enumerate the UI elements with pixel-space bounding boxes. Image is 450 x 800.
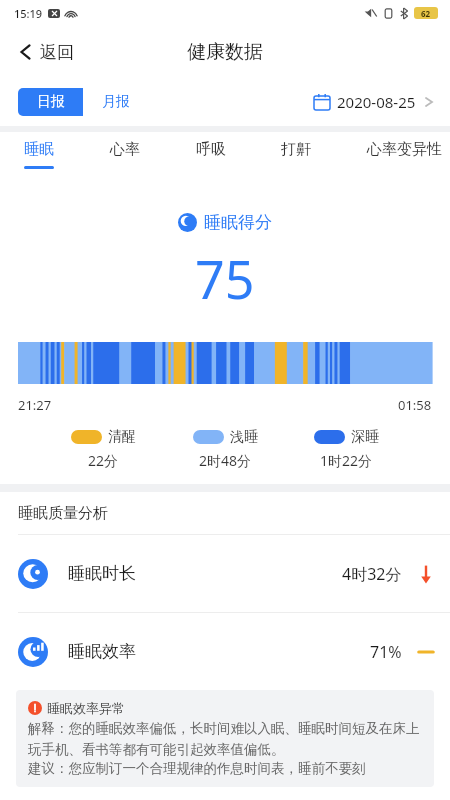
staticText: 75 xyxy=(195,243,255,314)
staticText: 睡眠得分 xyxy=(204,212,272,233)
button[interactable]: 打鼾 xyxy=(279,132,313,166)
staticText: 2020-08-25 xyxy=(337,92,416,112)
staticText: 62 xyxy=(421,8,431,19)
staticText: 呼吸 xyxy=(196,140,226,159)
button[interactable]: 睡眠 xyxy=(22,132,56,169)
staticText: 2时48分 xyxy=(199,451,252,470)
staticText: 月报 xyxy=(102,93,130,111)
button[interactable]: 心率 xyxy=(108,132,142,166)
button[interactable]: 睡眠时长 xyxy=(0,535,450,612)
staticText: 解释：您的睡眠效率偏低，长时间难以入眠、睡眠时间短及在床上玩手机、看书等都有可能… xyxy=(28,720,422,758)
staticText: 清醒 xyxy=(108,428,136,446)
staticText: 建议：您应制订一个合理规律的作息时间表，睡前不要刻 xyxy=(28,760,366,777)
staticText: 睡眠 xyxy=(24,140,54,159)
staticText: 睡眠效率 xyxy=(68,641,136,662)
staticText: 睡眠时长 xyxy=(68,563,136,584)
staticText: 15:19 xyxy=(14,6,43,21)
staticText: 心率变异性 xyxy=(367,140,442,159)
staticText: 1时22分 xyxy=(320,451,373,470)
staticText: 返回 xyxy=(40,42,74,63)
staticText: 日报 xyxy=(37,93,65,111)
staticText: 深睡 xyxy=(351,428,379,446)
button[interactable]: 月报 xyxy=(83,88,148,116)
staticText: 71% xyxy=(370,641,402,663)
staticText: 睡眠效率异常 xyxy=(47,700,125,716)
staticText: 4时32分 xyxy=(342,563,402,585)
staticText: 01:58 xyxy=(398,396,432,414)
button[interactable]: 睡眠效率 xyxy=(0,613,450,690)
button[interactable]: 呼吸 xyxy=(194,132,228,166)
button[interactable]: 返回 xyxy=(14,37,78,67)
staticText: 健康数据 xyxy=(187,40,263,64)
button[interactable]: 2020-08-25 xyxy=(310,88,438,116)
button[interactable]: 日报 xyxy=(18,88,83,116)
staticText: 打鼾 xyxy=(281,140,311,159)
staticText: 睡眠质量分析 xyxy=(18,504,108,523)
staticText: 22分 xyxy=(88,451,119,470)
staticText: 心率 xyxy=(110,140,140,159)
staticText: 浅睡 xyxy=(230,428,258,446)
staticText: 21:27 xyxy=(18,396,52,414)
button[interactable]: 心率变异性 xyxy=(365,132,444,166)
